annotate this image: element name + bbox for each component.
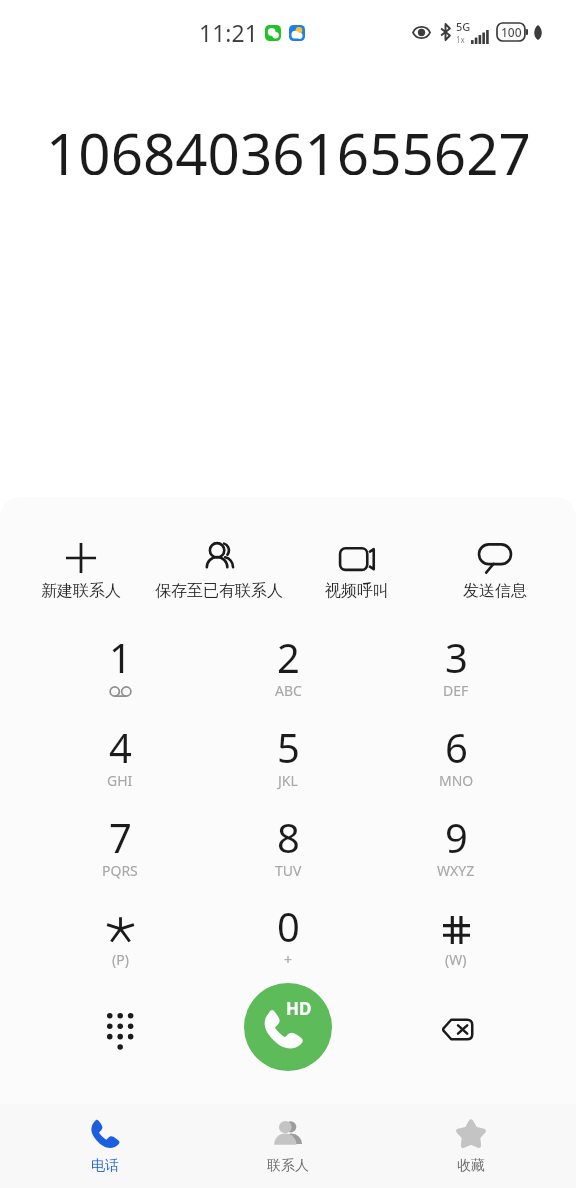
button[interactable]: 发送信息: [426, 542, 564, 602]
staticText: 发送信息: [463, 581, 527, 601]
staticText: JKL: [278, 771, 298, 790]
button[interactable]: 7: [36, 810, 204, 890]
button[interactable]: Keypad: [89, 999, 149, 1059]
staticText: PQRS: [102, 861, 138, 880]
staticText: HD: [286, 997, 312, 1020]
staticText: 5G: [456, 19, 471, 34]
staticText: 1: [109, 630, 132, 684]
staticText: DEF: [443, 681, 469, 700]
button[interactable]: 保存至已有联系人: [150, 542, 288, 602]
button[interactable]: 8: [204, 810, 372, 890]
button[interactable]: (P): [36, 899, 204, 979]
staticText: 100: [501, 24, 522, 40]
staticText: 3: [445, 630, 468, 684]
button[interactable]: 6: [372, 720, 540, 800]
staticText: 新建联系人: [41, 581, 121, 601]
button[interactable]: 2: [204, 630, 372, 710]
staticText: 收藏: [457, 1157, 485, 1175]
staticText: TUV: [275, 861, 302, 880]
button[interactable]: (W): [372, 899, 540, 979]
staticText: 联系人: [267, 1157, 309, 1175]
button[interactable]: 收藏: [379, 1104, 562, 1188]
staticText: 电话: [91, 1157, 119, 1175]
button[interactable]: 0: [204, 899, 372, 979]
staticText: 8: [277, 810, 300, 864]
staticText: +: [284, 950, 293, 969]
staticText: 7: [109, 810, 132, 864]
staticText: 2: [277, 630, 300, 684]
button[interactable]: 联系人: [196, 1104, 379, 1188]
staticText: 视频呼叫: [325, 581, 389, 601]
button[interactable]: 新建联系人: [12, 542, 150, 602]
button[interactable]: 5: [204, 720, 372, 800]
staticText: 5: [277, 720, 300, 774]
staticText: ABC: [275, 681, 302, 700]
button[interactable]: Delete: [427, 999, 487, 1059]
button[interactable]: 9: [372, 810, 540, 890]
staticText: WXYZ: [437, 861, 475, 880]
staticText: GHI: [107, 771, 133, 790]
staticText: 6: [445, 720, 468, 774]
button[interactable]: 3: [372, 630, 540, 710]
staticText: 11:21: [199, 17, 258, 48]
button[interactable]: Call: [244, 983, 332, 1071]
button[interactable]: 电话: [14, 1104, 196, 1188]
staticText: MNO: [439, 771, 474, 790]
staticText: 4: [109, 720, 132, 774]
staticText: 106840361655627: [46, 115, 531, 175]
staticText: 0: [277, 899, 300, 953]
staticText: (P): [112, 950, 129, 969]
staticText: 9: [445, 810, 468, 864]
button[interactable]: 4: [36, 720, 204, 800]
staticText: 1x: [456, 34, 465, 45]
staticText: 保存至已有联系人: [155, 581, 283, 601]
staticText: (W): [445, 950, 467, 969]
button[interactable]: 视频呼叫: [288, 542, 426, 602]
button[interactable]: 1: [36, 630, 204, 710]
